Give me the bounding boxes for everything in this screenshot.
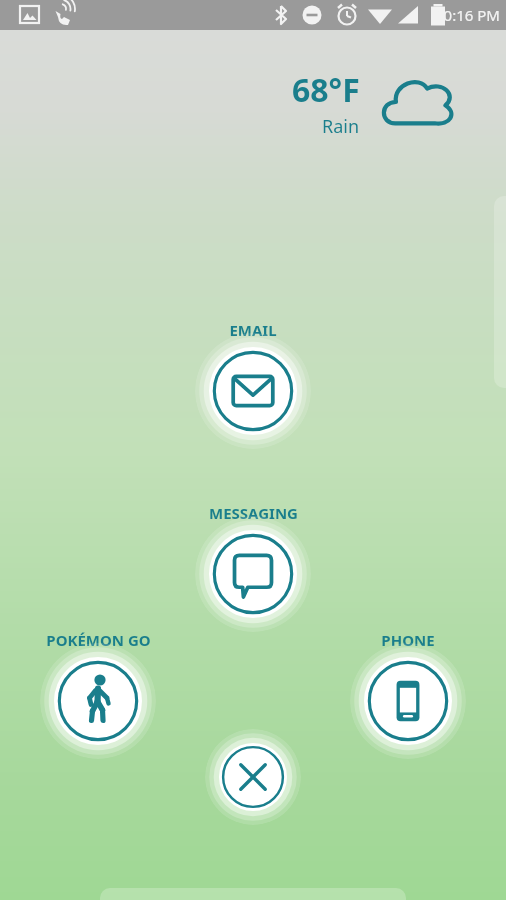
button[interactable]: Close xyxy=(205,729,301,825)
staticText: PHONE xyxy=(381,630,435,650)
button[interactable]: MESSAGING xyxy=(195,516,311,632)
staticText: 10:16 PM xyxy=(435,5,500,25)
staticText: POKÉMON GO xyxy=(46,630,151,650)
staticText: MESSAGING xyxy=(209,503,298,523)
staticText: Rain xyxy=(322,114,360,139)
button[interactable]: EMAIL xyxy=(195,333,311,449)
staticText: 68°F xyxy=(292,68,360,112)
button[interactable]: POKÉMON GO xyxy=(40,643,156,759)
button[interactable]: PHONE xyxy=(350,643,466,759)
staticText: EMAIL xyxy=(229,320,277,340)
